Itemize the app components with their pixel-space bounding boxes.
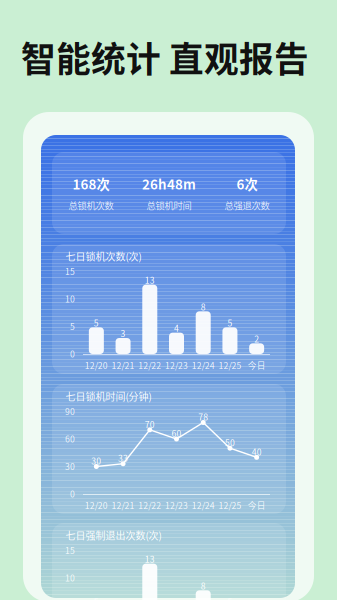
- staticText: 30: [65, 460, 75, 472]
- staticText: 78: [198, 410, 208, 423]
- staticText: 5: [227, 316, 232, 329]
- staticText: 12/24: [192, 499, 215, 511]
- staticText: 12/21: [112, 359, 135, 371]
- staticText: 8: [201, 579, 206, 592]
- staticText: 70: [145, 418, 155, 430]
- staticText: 5: [94, 316, 99, 329]
- staticText: 15: [65, 265, 75, 277]
- staticText: 30: [91, 454, 101, 467]
- staticText: 3: [121, 327, 126, 339]
- staticText: 12/21: [112, 499, 135, 511]
- staticText: 总锁机时间: [146, 198, 191, 212]
- staticText: 10: [65, 571, 75, 584]
- staticText: 90: [65, 405, 75, 417]
- staticText: 60: [65, 432, 75, 445]
- staticText: 60: [171, 427, 181, 439]
- staticText: 12/20: [85, 359, 108, 371]
- staticText: 4: [174, 322, 179, 334]
- staticText: 0: [70, 487, 75, 500]
- staticText: 26h48m: [142, 174, 196, 193]
- staticText: 今日: [248, 499, 266, 511]
- staticText: 12/23: [165, 499, 188, 511]
- staticText: 5: [94, 595, 99, 600]
- staticText: 12/24: [192, 359, 215, 371]
- staticText: 6次: [236, 174, 257, 193]
- staticText: 七日强制退出次数(次): [65, 528, 161, 542]
- staticText: 168次: [72, 174, 109, 193]
- staticText: 15: [65, 544, 75, 556]
- staticText: 总锁机次数: [68, 198, 113, 212]
- staticText: 8: [201, 300, 206, 313]
- staticText: 总强退次数: [224, 198, 269, 212]
- staticText: 40: [252, 445, 262, 458]
- staticText: 0: [70, 347, 75, 360]
- staticText: 12/22: [138, 499, 161, 511]
- staticText: 今日: [248, 359, 266, 371]
- staticText: 10: [65, 292, 75, 305]
- staticText: 13: [145, 274, 155, 286]
- staticText: 12/20: [85, 499, 108, 511]
- staticText: 12/25: [218, 359, 241, 371]
- staticText: 12/23: [165, 359, 188, 371]
- staticText: 5: [227, 595, 232, 600]
- staticText: 12/25: [218, 499, 241, 511]
- staticText: 5: [70, 320, 75, 332]
- staticText: 13: [145, 553, 155, 565]
- staticText: 12/22: [138, 359, 161, 371]
- staticText: 七日锁机次数(次): [65, 249, 141, 263]
- staticText: 33: [118, 452, 128, 464]
- staticText: 2: [254, 332, 259, 345]
- staticText: 50: [225, 436, 235, 449]
- staticText: 智能统计 直观报告: [21, 32, 309, 82]
- staticText: 七日锁机时间(分钟): [65, 389, 151, 403]
